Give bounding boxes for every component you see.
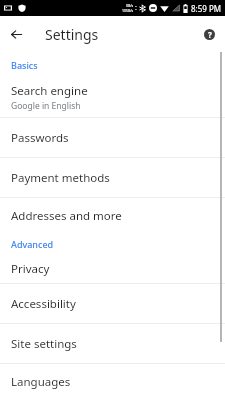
- staticText: Google in English: [11, 100, 81, 112]
- staticText: Settings: [45, 25, 99, 44]
- staticText: Site settings: [11, 336, 77, 352]
- staticText: Basics: [11, 59, 38, 71]
- button[interactable]: Help: [200, 25, 218, 43]
- button[interactable]: Search engine: [0, 78, 225, 117]
- staticText: 0B/s: [126, 3, 134, 8]
- staticText: Addresses and more: [11, 208, 122, 224]
- staticText: :: [135, 3, 137, 13]
- staticText: Search engine: [11, 83, 88, 99]
- staticText: Privacy: [11, 261, 50, 277]
- button[interactable]: Privacy: [0, 255, 225, 283]
- staticText: 8:59 PM: [191, 3, 222, 14]
- staticText: Payment methods: [11, 170, 110, 186]
- button[interactable]: Back: [7, 25, 25, 43]
- staticText: ?: [208, 29, 212, 40]
- button[interactable]: Languages: [0, 364, 225, 400]
- button[interactable]: Site settings: [0, 324, 225, 363]
- button[interactable]: Accessibility: [0, 284, 225, 323]
- staticText: Languages: [11, 374, 71, 390]
- staticText: 105B/s: [122, 8, 134, 13]
- button[interactable]: Addresses and more: [0, 198, 225, 233]
- button[interactable]: Payment methods: [0, 158, 225, 197]
- staticText: Advanced: [11, 238, 54, 250]
- staticText: Passwords: [11, 130, 69, 146]
- button[interactable]: Passwords: [0, 118, 225, 157]
- staticText: Accessibility: [11, 296, 76, 312]
